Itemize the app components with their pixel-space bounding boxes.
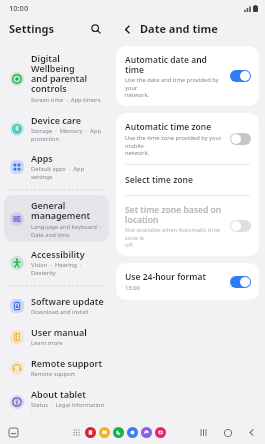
staticText: Set time zone based on location [125,204,222,225]
button[interactable]: App 1 [99,427,110,438]
button[interactable]: App 3 [127,427,138,438]
staticText: Settings [9,21,55,36]
button[interactable]: App 2 [113,427,124,438]
button[interactable]: Recents [197,426,210,439]
staticText: Remote support [31,357,103,369]
button[interactable]: Back [245,426,258,439]
staticText: Storage · Memory · App protection [31,127,101,142]
staticText: About tablet [31,388,86,400]
staticText: Automatic date and time [125,54,225,75]
button[interactable]: Toggle [230,70,251,82]
button[interactable]: Accessibility [4,244,109,280]
staticText: Digital Wellbeing and parental controls [31,52,105,95]
staticText: Download and install [31,308,89,316]
staticText: Language and keyboard · Date and time [31,223,102,238]
button[interactable]: Device care [4,110,109,146]
button[interactable]: User manual [4,322,109,351]
staticText: Screen time · App timers [31,96,101,104]
button[interactable]: General management [4,195,109,242]
staticText: Automatic time zone [125,121,212,133]
button[interactable]: All apps [71,427,82,438]
staticText: Use 24-hour format [125,271,206,283]
staticText: Device care [31,114,82,126]
button[interactable]: Remote support [4,353,109,382]
staticText: 13:00 [125,284,140,292]
button[interactable]: Automatic time zone [116,113,259,164]
staticText: Vision · Hearing · Dexterity [31,261,82,276]
button[interactable]: Toggle [230,220,251,232]
staticText: Date and time [140,21,218,36]
button[interactable]: App 5 [155,427,166,438]
button[interactable]: Home [221,426,234,439]
button[interactable]: Digital Wellbeing and parental controls [4,48,109,108]
button[interactable]: App 0 [85,427,96,438]
button[interactable]: Automatic date and time [116,46,259,106]
staticText: Software update [31,295,104,307]
staticText: Use the date and time provided by your n… [125,76,225,98]
staticText: Apps [31,152,53,164]
button[interactable]: Recent apps tray [6,425,20,439]
button[interactable]: Toggle [230,276,251,288]
staticText: Use the time zone provided by your mobil… [125,134,225,156]
staticText: Status · Legal information · Tablet name [31,401,105,415]
button[interactable]: Apps [4,148,109,184]
staticText: User manual [31,326,87,338]
staticText: Not available when Automatic time zone i… [125,226,225,248]
staticText: Accessibility [31,248,85,260]
button[interactable]: Toggle [230,133,251,145]
staticText: General management [31,199,91,222]
button[interactable]: Search [87,20,105,38]
button[interactable]: Set time zone based on location [116,196,259,256]
staticText: Remote support [31,370,76,378]
button[interactable]: Select time zone [116,165,259,195]
staticText: Default apps · App settings [31,165,105,180]
staticText: Learn more [31,339,63,347]
staticText: Select time zone [125,174,193,186]
button[interactable]: About tablet [4,384,109,419]
button[interactable]: Use 24-hour format [116,263,259,300]
button[interactable]: Back [118,20,136,38]
button[interactable]: App 4 [141,427,152,438]
button[interactable]: Software update [4,291,109,320]
staticText: 10:00 [9,3,29,13]
